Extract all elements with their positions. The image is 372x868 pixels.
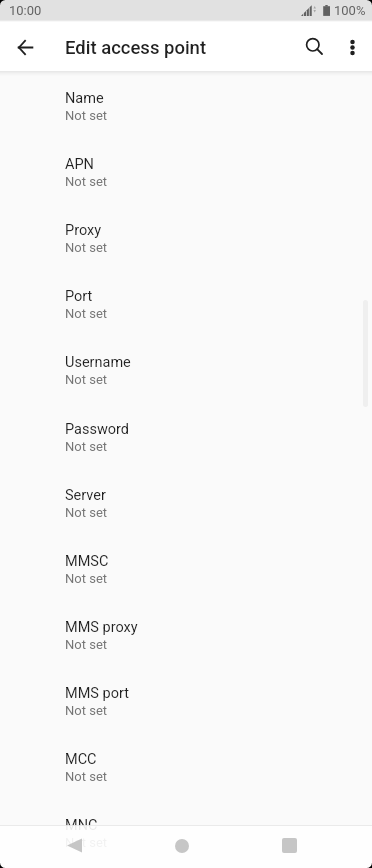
staticText: Not set — [65, 306, 108, 321]
staticText: Username — [65, 354, 131, 371]
button[interactable]: MNC — [0, 798, 372, 864]
staticText: Server — [65, 487, 106, 504]
staticText: Not set — [65, 571, 108, 586]
button[interactable]: Search — [298, 30, 331, 63]
button[interactable]: MMS proxy — [0, 600, 372, 666]
staticText: Not set — [65, 108, 108, 123]
staticText: MMSC — [65, 553, 109, 570]
staticText: Edit access point — [65, 37, 207, 59]
staticText: Password — [65, 421, 130, 438]
staticText: MMS port — [65, 685, 129, 702]
button[interactable]: Navigate up — [9, 31, 42, 64]
button[interactable]: Password — [0, 402, 372, 468]
staticText: MCC — [65, 751, 97, 768]
staticText: Not set — [65, 703, 108, 718]
staticText: Name — [65, 90, 104, 107]
staticText: Port — [65, 288, 93, 305]
button[interactable]: More options — [336, 31, 369, 64]
button[interactable]: Back — [52, 824, 96, 867]
button[interactable]: Home — [160, 824, 204, 867]
staticText: Not set — [65, 769, 108, 784]
staticText: Not set — [65, 174, 108, 189]
button[interactable]: MMSC — [0, 534, 372, 600]
button[interactable]: Recent apps — [267, 824, 311, 867]
staticText: MNC — [65, 817, 98, 834]
button[interactable]: Username — [0, 335, 372, 401]
staticText: Not set — [65, 372, 108, 387]
staticText: Not set — [65, 505, 108, 520]
staticText: 10:00 — [9, 3, 42, 18]
button[interactable]: Server — [0, 468, 372, 534]
staticText: Not set — [65, 637, 108, 652]
staticText: MMS proxy — [65, 619, 138, 636]
button[interactable]: MCC — [0, 732, 372, 798]
button[interactable]: MMS port — [0, 666, 372, 732]
button[interactable]: Port — [0, 269, 372, 335]
staticText: Not set — [65, 439, 108, 454]
button[interactable]: Name — [0, 71, 372, 137]
button[interactable]: Proxy — [0, 203, 372, 269]
staticText: Not set — [65, 835, 108, 850]
staticText: 100% — [334, 3, 366, 18]
staticText: APN — [65, 156, 94, 173]
staticText: Not set — [65, 240, 108, 255]
button[interactable]: APN — [0, 137, 372, 203]
staticText: Proxy — [65, 222, 102, 239]
